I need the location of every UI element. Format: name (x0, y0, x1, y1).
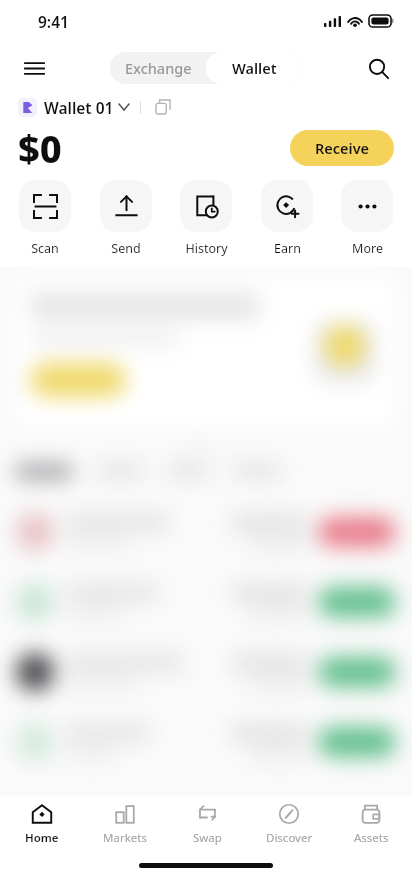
staticText: Scan (31, 240, 59, 257)
button[interactable]: Earn (256, 180, 318, 257)
staticText: Swap (193, 830, 222, 846)
staticText: Home (25, 830, 59, 846)
button[interactable]: History (175, 180, 237, 257)
button[interactable]: Copy address (152, 96, 174, 118)
staticText: Receive (315, 138, 370, 158)
button[interactable]: Wallet (206, 52, 302, 84)
button[interactable]: Home (0, 796, 83, 852)
staticText: Send (111, 240, 141, 257)
staticText: History (185, 240, 228, 257)
button[interactable]: Discover (248, 796, 330, 852)
button[interactable]: Send (95, 180, 157, 257)
button[interactable]: Receive (290, 130, 394, 166)
staticText: Wallet (232, 58, 277, 78)
staticText: 9:41 (38, 11, 69, 32)
staticText: Wallet 01 (44, 97, 114, 118)
button[interactable]: Search (358, 48, 398, 88)
button[interactable]: Scan (14, 180, 76, 257)
button[interactable]: More (336, 180, 398, 257)
button[interactable]: Markets (83, 796, 166, 852)
staticText: Earn (274, 240, 301, 257)
button[interactable]: Wallet 01 (18, 94, 174, 120)
button[interactable]: Menu (14, 48, 54, 88)
staticText: Exchange (125, 58, 192, 78)
staticText: Markets (103, 830, 147, 846)
staticText: Assets (354, 830, 389, 846)
button[interactable]: Assets (330, 796, 412, 852)
staticText: $0 (18, 122, 62, 174)
button[interactable]: Exchange (110, 52, 206, 84)
staticText: More (352, 240, 383, 257)
staticText: Discover (266, 830, 313, 846)
button[interactable]: Swap (166, 796, 248, 852)
